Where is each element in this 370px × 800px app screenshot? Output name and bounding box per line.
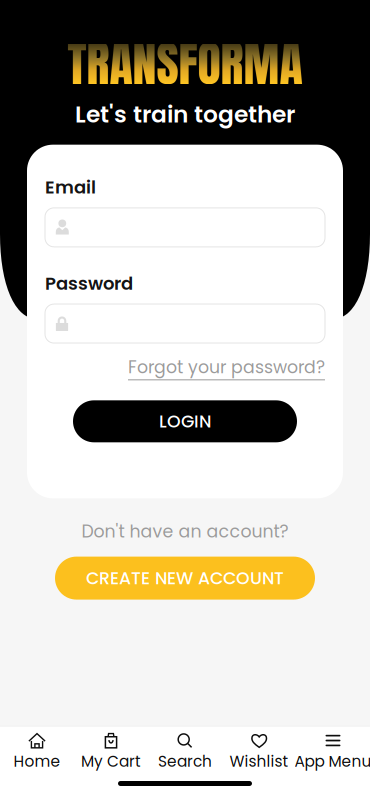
button[interactable]: Forgot your password? <box>128 355 325 380</box>
button[interactable]: LOGIN <box>73 400 297 442</box>
button[interactable]: Search <box>148 729 222 775</box>
staticText: Let's train together <box>75 98 295 131</box>
staticText: Password <box>45 271 133 296</box>
staticText: Search <box>158 750 212 772</box>
button[interactable]: CREATE NEW ACCOUNT <box>55 557 315 600</box>
staticText: Email <box>45 175 96 200</box>
staticText: LOGIN <box>159 409 211 433</box>
staticText: App Menu <box>294 750 370 772</box>
staticText: Forgot your password? <box>128 355 325 379</box>
button[interactable]: My Cart <box>74 729 148 775</box>
staticText: CREATE NEW ACCOUNT <box>86 566 284 590</box>
button[interactable]: Wishlist <box>222 729 296 775</box>
staticText: Home <box>13 750 60 772</box>
staticText: Wishlist <box>229 750 288 772</box>
staticText: My Cart <box>81 750 141 772</box>
button[interactable]: Home <box>0 729 74 775</box>
button[interactable]: App Menu <box>296 729 370 775</box>
staticText: Don't have an account? <box>81 519 288 544</box>
